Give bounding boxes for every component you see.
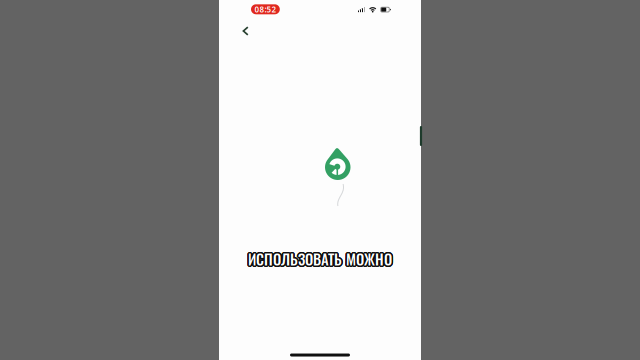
- staticText: ИСПОЛЬЗОВАТЬ МОЖНО: [247, 247, 391, 269]
- staticText: ИСПОЛЬЗОВАТЬ МОЖНО: [247, 249, 391, 270]
- staticText: ИСПОЛЬЗОВАТЬ МОЖНО: [249, 247, 393, 269]
- staticText: ИСПОЛЬЗОВАТЬ МОЖНО: [248, 247, 392, 269]
- staticText: ИСПОЛЬЗОВАТЬ МОЖНО: [247, 247, 391, 269]
- staticText: ИСПОЛЬЗОВАТЬ МОЖНО: [248, 246, 392, 268]
- staticText: ИСПОЛЬЗОВАТЬ МОЖНО: [250, 248, 394, 270]
- staticText: ИСПОЛЬЗОВАТЬ МОЖНО: [249, 247, 393, 268]
- staticText: ИСПОЛЬЗОВАТЬ МОЖНО: [249, 247, 393, 269]
- staticText: ИСПОЛЬЗОВАТЬ МОЖНО: [247, 248, 391, 270]
- staticText: ИСПОЛЬЗОВАТЬ МОЖНО: [248, 247, 392, 269]
- staticText: ИСПОЛЬЗОВАТЬ МОЖНО: [249, 248, 393, 270]
- staticText: 08:52: [254, 4, 276, 15]
- button[interactable]: Back: [234, 20, 258, 42]
- staticText: ИСПОЛЬЗОВАТЬ МОЖНО: [247, 249, 391, 271]
- staticText: ИСПОЛЬЗОВАТЬ МОЖНО: [247, 248, 391, 269]
- staticText: ИСПОЛЬЗОВАТЬ МОЖНО: [249, 249, 393, 271]
- staticText: ИСПОЛЬЗОВАТЬ МОЖНО: [249, 248, 393, 269]
- staticText: ИСПОЛЬЗОВАТЬ МОЖНО: [248, 248, 392, 270]
- staticText: ИСПОЛЬЗОВАТЬ МОЖНО: [248, 249, 392, 270]
- staticText: ИСПОЛЬЗОВАТЬ МОЖНО: [247, 247, 391, 268]
- staticText: ИСПОЛЬЗОВАТЬ МОЖНО: [247, 249, 391, 270]
- staticText: ИСПОЛЬЗОВАТЬ МОЖНО: [247, 247, 391, 269]
- staticText: ИСПОЛЬЗОВАТЬ МОЖНО: [248, 249, 392, 271]
- staticText: ИСПОЛЬЗОВАТЬ МОЖНО: [249, 249, 393, 270]
- staticText: ИСПОЛЬЗОВАТЬ МОЖНО: [247, 249, 391, 271]
- staticText: ИСПОЛЬЗОВАТЬ МОЖНО: [248, 250, 392, 271]
- staticText: ИСПОЛЬЗОВАТЬ МОЖНО: [249, 249, 393, 270]
- staticText: ИСПОЛЬЗОВАТЬ МОЖНО: [249, 249, 393, 271]
- staticText: ИСПОЛЬЗОВАТЬ МОЖНО: [247, 248, 391, 270]
- staticText: ИСПОЛЬЗОВАТЬ МОЖНО: [249, 247, 393, 269]
- staticText: ИСПОЛЬЗОВАТЬ МОЖНО: [248, 249, 392, 270]
- staticText: ИСПОЛЬЗОВАТЬ МОЖНО: [246, 248, 390, 270]
- staticText: ИСПОЛЬЗОВАТЬ МОЖНО: [248, 247, 392, 269]
- staticText: ИСПОЛЬЗОВАТЬ МОЖНО: [249, 248, 393, 270]
